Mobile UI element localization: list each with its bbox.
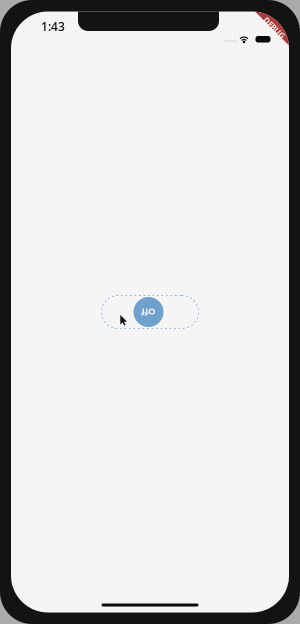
staticText: Off	[141, 306, 155, 318]
staticText: 1:43	[41, 18, 65, 34]
button[interactable]: Toggle	[101, 295, 198, 328]
staticText: DEBUG	[261, 22, 288, 33]
